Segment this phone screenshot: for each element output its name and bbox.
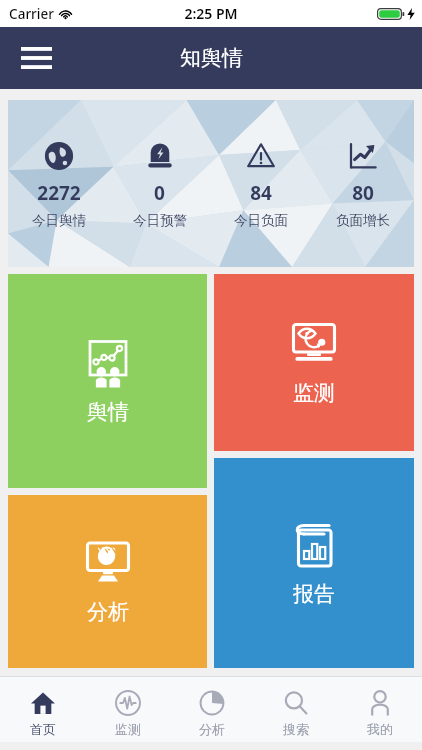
button[interactable]: 报告 — [214, 458, 414, 668]
staticText: 0 — [154, 180, 165, 206]
staticText: 负面增长 — [336, 212, 390, 229]
staticText: Carrier — [9, 5, 54, 23]
staticText: 分析 — [87, 599, 129, 625]
staticText: 80 — [352, 180, 374, 206]
button[interactable]: 分析 — [8, 495, 207, 668]
button[interactable]: 2272 — [8, 135, 109, 233]
button[interactable]: 80 — [312, 135, 414, 233]
staticText: 今日舆情 — [32, 212, 86, 229]
button[interactable]: 首页 — [0, 682, 85, 737]
button[interactable]: 我的 — [338, 682, 422, 737]
staticText: 2272 — [37, 180, 81, 206]
button[interactable]: 监测 — [214, 274, 414, 451]
staticText: 2:25 PM — [184, 4, 238, 23]
button[interactable]: 搜索 — [254, 682, 338, 737]
staticText: 今日负面 — [234, 212, 288, 229]
staticText: 监测 — [293, 380, 335, 406]
staticText: 今日预警 — [133, 212, 187, 229]
button[interactable]: 分析 — [170, 682, 254, 737]
button[interactable]: 84 — [210, 135, 312, 233]
button[interactable]: Menu — [14, 36, 58, 80]
staticText: 首页 — [30, 721, 56, 737]
staticText: 我的 — [367, 721, 393, 737]
staticText: 84 — [250, 180, 272, 206]
staticText: 搜索 — [283, 721, 309, 737]
button[interactable]: 舆情 — [8, 274, 207, 488]
staticText: 知舆情 — [180, 45, 243, 71]
staticText: 分析 — [199, 721, 225, 737]
staticText: 监测 — [115, 721, 141, 737]
staticText: 报告 — [293, 581, 335, 607]
button[interactable]: 0 — [109, 135, 210, 233]
staticText: 舆情 — [87, 399, 129, 425]
button[interactable]: 监测 — [85, 682, 170, 737]
